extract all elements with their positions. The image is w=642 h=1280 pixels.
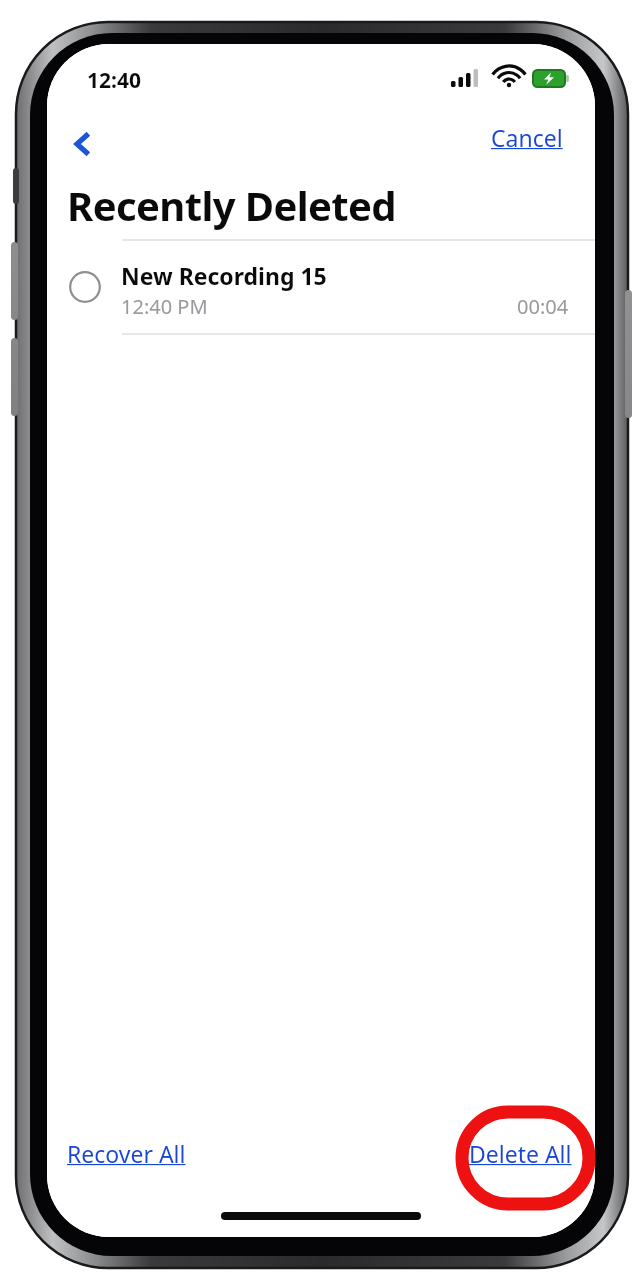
button[interactable]: New Recording 15 [47,239,595,335]
staticText: Recover All [67,1138,186,1169]
staticText: 00:04 [517,293,569,320]
staticText: New Recording 15 [121,260,327,291]
button[interactable]: Back [55,116,111,172]
button[interactable]: Delete All [463,1132,578,1175]
staticText: Cancel [491,122,563,153]
staticText: Recently Deleted [67,178,397,232]
staticText: 12:40 [87,66,141,95]
staticText: 12:40 PM [121,293,208,320]
staticText: Delete All [469,1138,572,1169]
button[interactable]: Cancel [487,118,567,157]
button[interactable]: Recover All [61,1132,192,1175]
